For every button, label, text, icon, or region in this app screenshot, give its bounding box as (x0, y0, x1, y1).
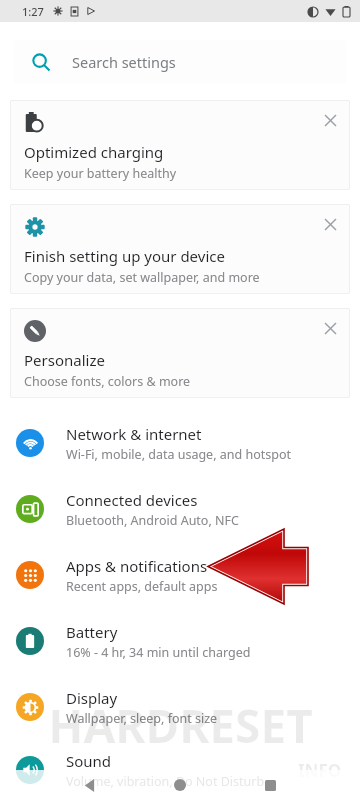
staticText: Display (66, 688, 118, 708)
button[interactable]: Display (0, 674, 360, 740)
button[interactable]: Dismiss (316, 210, 344, 238)
staticText: Recent apps, default apps (66, 578, 218, 595)
button[interactable]: Home (163, 770, 197, 800)
button[interactable]: Apps & notifications (0, 542, 360, 608)
button[interactable]: Connected devices (0, 476, 360, 542)
staticText: Connected devices (66, 490, 198, 510)
staticText: Search settings (72, 52, 176, 72)
button[interactable]: Optimized charging (10, 100, 350, 190)
staticText: Network & internet (66, 424, 202, 444)
staticText: Sound (66, 751, 112, 771)
staticText: Optimized charging (24, 142, 164, 162)
button[interactable]: Battery (0, 608, 360, 674)
staticText: Volume, vibration, Do Not Disturb (66, 773, 265, 790)
staticText: 16% - 4 hr, 34 min until charged (66, 644, 251, 661)
button[interactable]: Recent apps (253, 770, 287, 800)
staticText: Choose fonts, colors & more (24, 373, 191, 390)
staticText: Bluetooth, Android Auto, NFC (66, 512, 239, 529)
button[interactable]: Personalize (10, 308, 350, 398)
staticText: Wallpaper, sleep, font size (66, 710, 218, 727)
button[interactable]: Network & internet (0, 410, 360, 476)
button[interactable]: Search settings (14, 40, 346, 84)
staticText: Copy your data, set wallpaper, and more (24, 269, 260, 286)
staticText: Personalize (24, 350, 105, 370)
staticText: INFO (298, 759, 342, 782)
staticText: HARDRESET (48, 694, 313, 757)
staticText: Battery (66, 622, 118, 642)
button[interactable]: Finish setting up your device (10, 204, 350, 294)
button[interactable]: Dismiss (316, 314, 344, 342)
staticText: 1:27 (22, 4, 44, 19)
staticText: Finish setting up your device (24, 246, 225, 266)
staticText: Apps & notifications (66, 556, 208, 576)
button[interactable]: Dismiss (316, 106, 344, 134)
staticText: Wi-Fi, mobile, data usage, and hotspot (66, 446, 291, 463)
button[interactable]: Back (73, 770, 107, 800)
staticText: Keep your battery healthy (24, 165, 177, 182)
button[interactable]: Sound (0, 740, 360, 800)
